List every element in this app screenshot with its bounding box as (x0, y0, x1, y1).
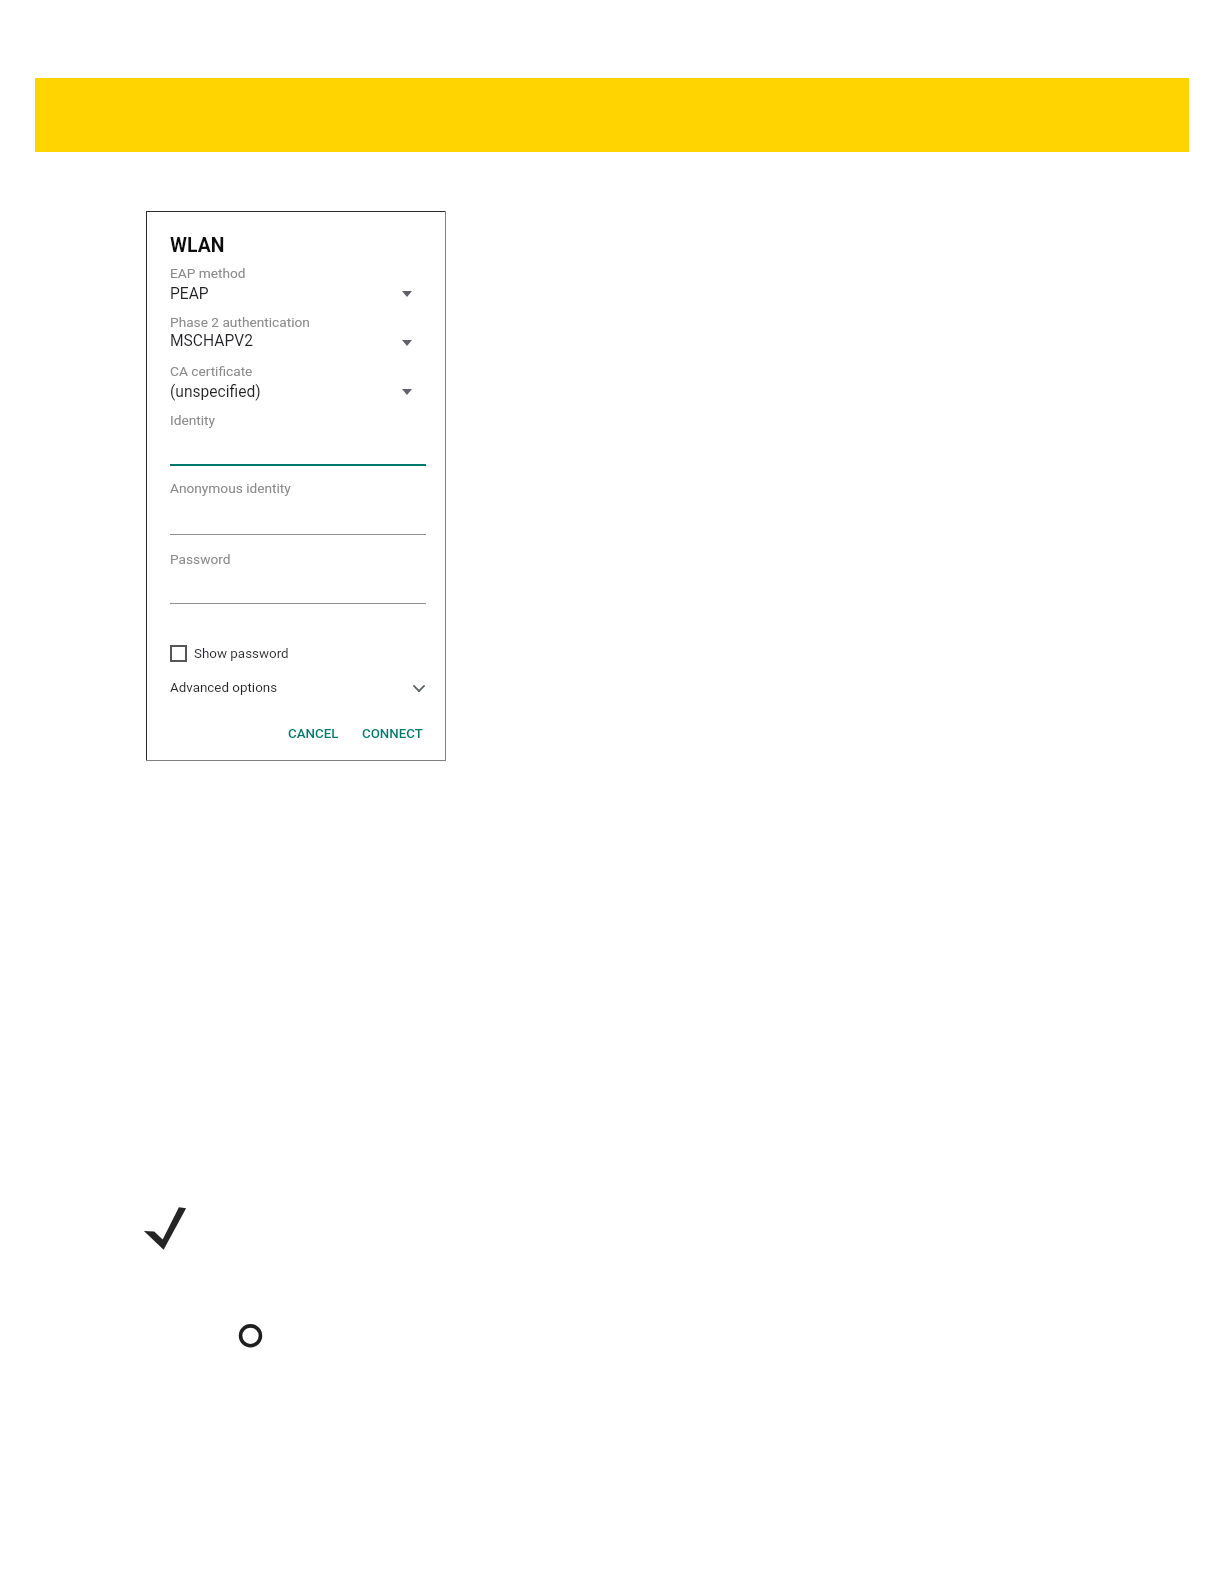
other: Expand advanced options (413, 685, 425, 692)
button[interactable]: Anonymous identity (170, 480, 291, 496)
button[interactable]: Show password (194, 646, 289, 662)
button[interactable]: CANCEL (288, 726, 339, 742)
staticText: CANCEL (288, 726, 339, 742)
button[interactable] (146, 211, 446, 761)
staticText: Advanced options (170, 680, 278, 696)
button[interactable]: MSCHAPV2 (170, 332, 253, 350)
button[interactable]: EAP method (170, 265, 246, 281)
other: Open menu (402, 340, 412, 346)
staticText: CONNECT (362, 726, 423, 742)
staticText: (unspecified) (170, 383, 261, 401)
other: Open menu (402, 291, 412, 297)
staticText: Anonymous identity (170, 480, 291, 496)
button[interactable]: Phase 2 authentication (170, 314, 310, 330)
button[interactable]: Password (170, 551, 231, 567)
button[interactable]: CONNECT (362, 726, 423, 742)
staticText: EAP method (170, 265, 246, 281)
staticText: PEAP (170, 285, 209, 303)
staticText: Phase 2 authentication (170, 314, 310, 330)
staticText: Show password (194, 646, 289, 662)
button[interactable]: (unspecified) (170, 383, 261, 401)
staticText: WLAN (170, 234, 225, 257)
button[interactable]: Identity (170, 412, 216, 428)
button[interactable]: WLAN (170, 234, 225, 257)
other: Open menu (402, 389, 412, 395)
button[interactable]: Advanced options (170, 680, 278, 696)
staticText: Identity (170, 412, 216, 428)
staticText: Password (170, 551, 231, 567)
button[interactable]: CA certificate (170, 363, 253, 379)
button[interactable]: PEAP (170, 285, 209, 303)
button[interactable]: Show password (170, 645, 187, 662)
staticText: MSCHAPV2 (170, 332, 253, 350)
staticText: CA certificate (170, 363, 253, 379)
